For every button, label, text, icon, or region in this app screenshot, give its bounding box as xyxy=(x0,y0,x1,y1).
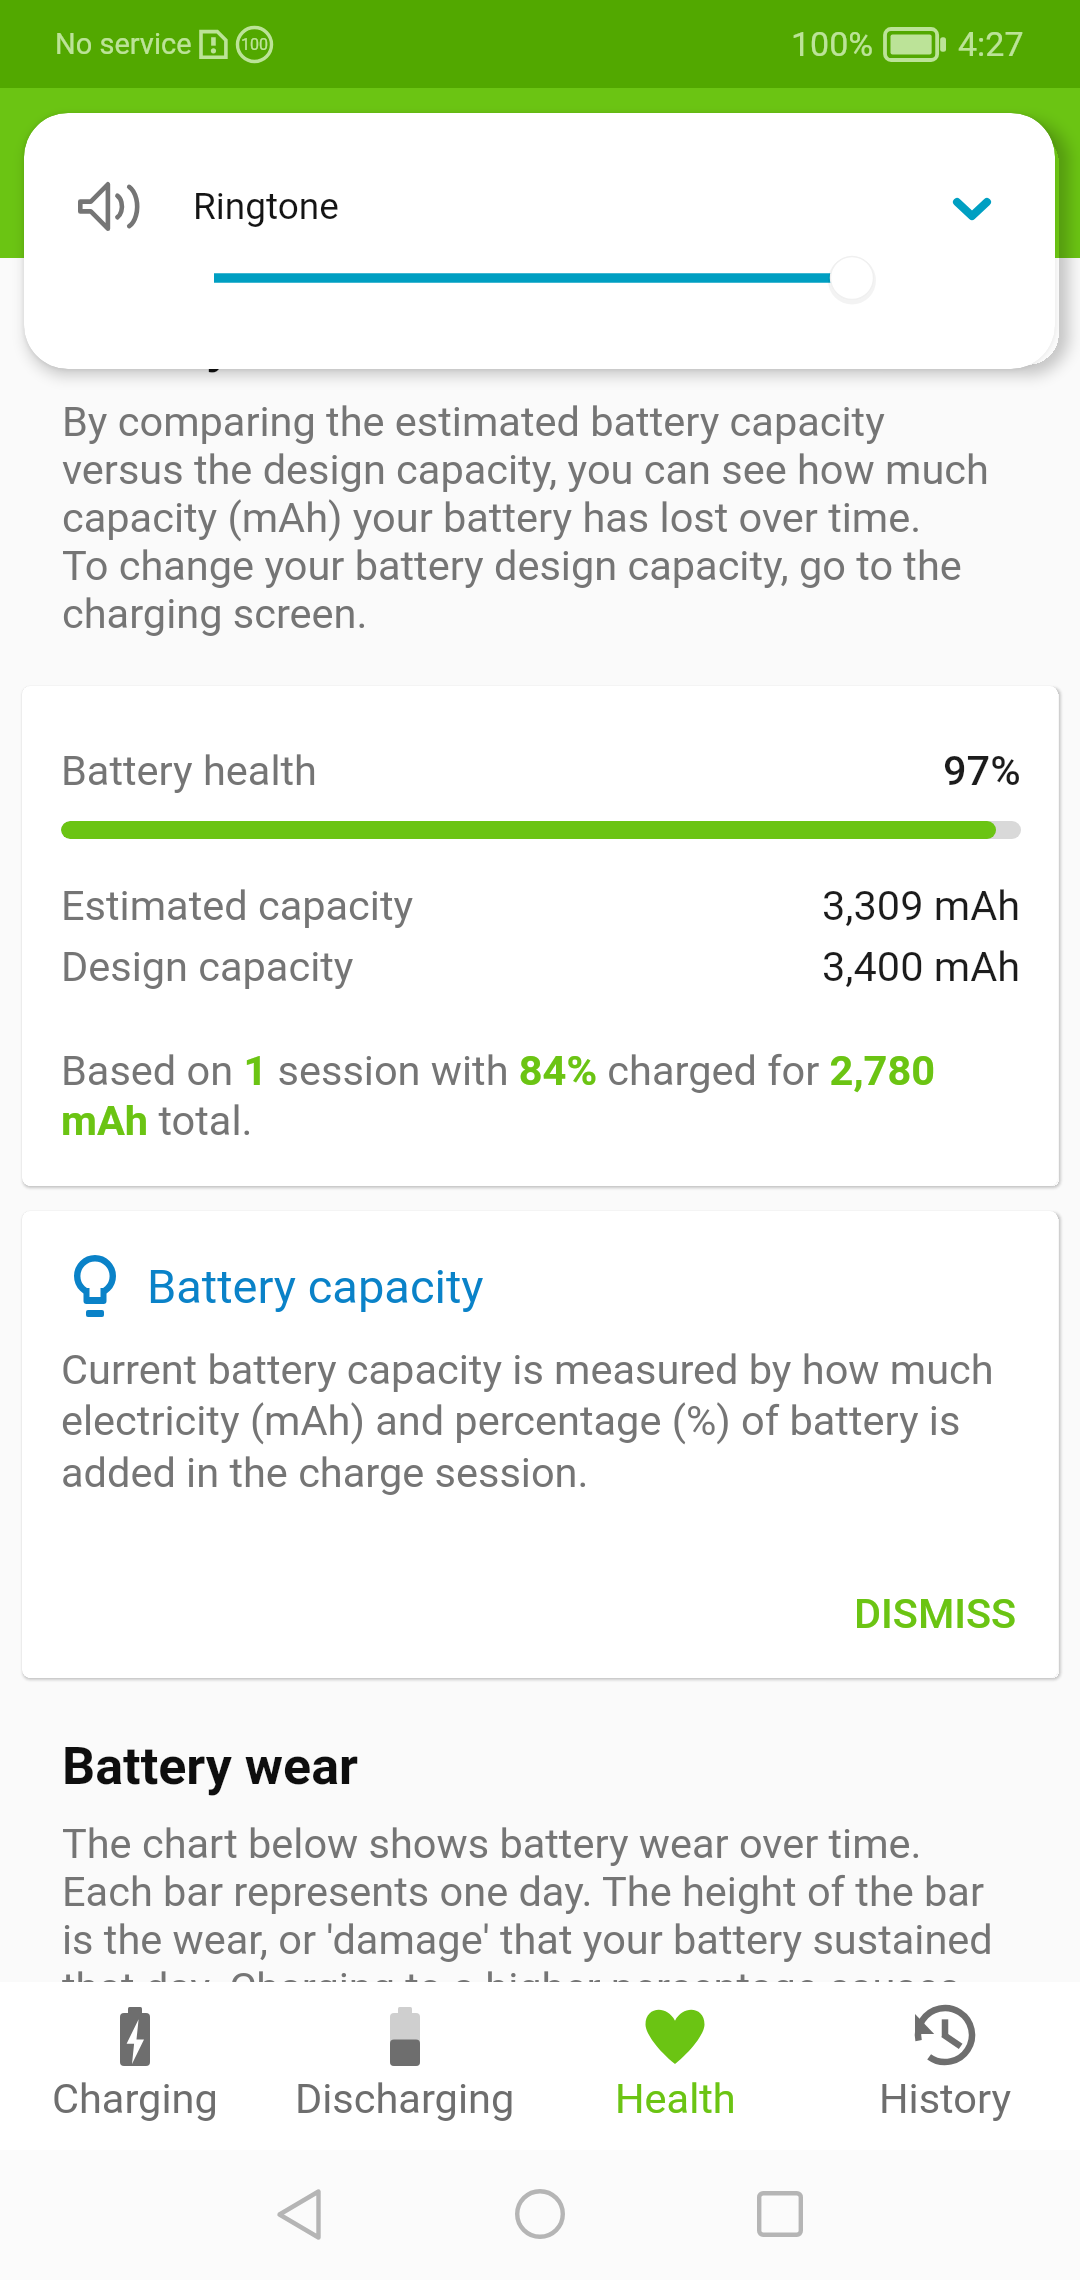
button[interactable]: Ringtone volume xyxy=(194,248,894,310)
staticText: Health xyxy=(615,2074,736,2123)
button[interactable]: Recents xyxy=(720,2154,840,2274)
staticText: Battery wear xyxy=(62,1736,359,1797)
staticText: By comparing the estimated battery capac… xyxy=(62,397,1012,638)
staticText: History xyxy=(879,2074,1012,2123)
staticText: 3,309 mAh xyxy=(822,881,1021,930)
staticText: The chart below shows battery wear over … xyxy=(62,1819,1012,2012)
button[interactable]: Home xyxy=(480,2154,600,2274)
staticText: Design capacity xyxy=(61,942,822,991)
staticText: Current battery capacity is measured by … xyxy=(61,1345,1021,1497)
staticText: 100 xyxy=(241,35,268,54)
staticText: Discharging xyxy=(295,2074,515,2123)
staticText: Estimated capacity xyxy=(61,881,822,930)
button[interactable]: Mute ringtone xyxy=(62,168,154,244)
button[interactable]: Discharging xyxy=(270,1982,540,2150)
staticText: Battery capacity xyxy=(147,1259,484,1314)
button[interactable]: History xyxy=(810,1982,1080,2150)
staticText: Ringtone xyxy=(193,185,339,228)
staticText: 4:27 xyxy=(958,24,1024,64)
button[interactable]: Health xyxy=(540,1982,810,2150)
staticText: 97% xyxy=(943,746,1021,795)
staticText: Battery health xyxy=(62,313,391,374)
staticText: DISMISS xyxy=(854,1589,1017,1638)
button[interactable]: Charging xyxy=(0,1982,270,2150)
button[interactable]: Collapse volume panel xyxy=(924,161,1020,257)
staticText: No service xyxy=(55,27,192,61)
button[interactable]: Back xyxy=(239,2154,359,2274)
staticText: Battery health xyxy=(61,746,943,795)
button[interactable]: DISMISS xyxy=(850,1583,1021,1644)
staticText: Based on 1 session with 84% charged for … xyxy=(61,1046,1021,1146)
staticText: Charging xyxy=(52,2074,218,2123)
staticText: 3,400 mAh xyxy=(822,942,1021,991)
staticText: 100% xyxy=(791,24,874,64)
